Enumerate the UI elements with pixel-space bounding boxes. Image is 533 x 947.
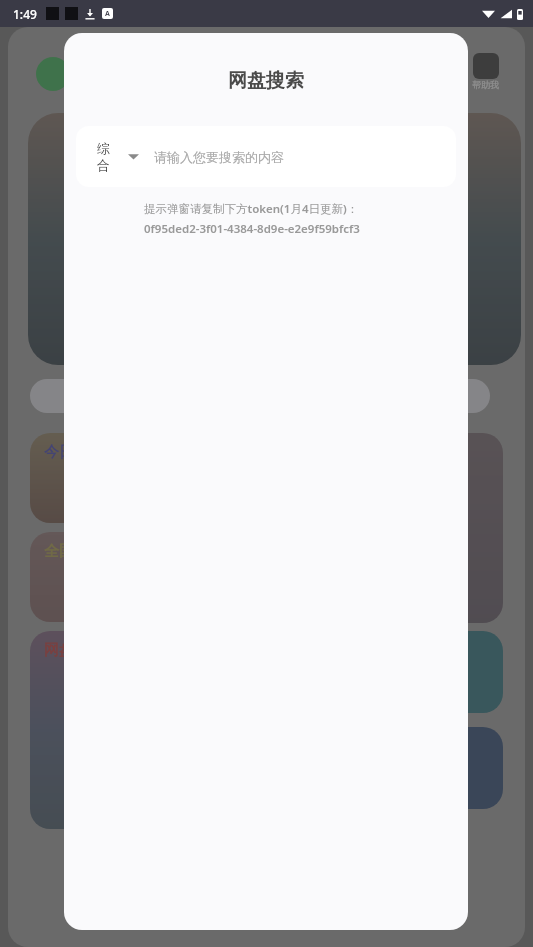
staticText: 网盘搜索 <box>64 69 468 93</box>
staticText: 综合 <box>97 140 116 174</box>
staticText: A <box>105 9 110 19</box>
button[interactable]: 综合 <box>76 126 456 187</box>
staticText: 今日 <box>44 443 74 462</box>
staticText: 0f95ded2-3f01-4384-8d9e-e2e9f59bfcf3 <box>144 221 360 237</box>
staticText: 帮助我 <box>472 79 499 90</box>
staticText: 提示弹窗请复制下方token(1月4日更新)： <box>144 201 359 217</box>
other: Select search type <box>128 151 139 162</box>
staticText: 请输入您要搜索的内容 <box>154 149 284 165</box>
staticText: 1:49 <box>13 6 37 22</box>
staticText: 全国 <box>44 542 74 561</box>
staticText: 网盘 <box>44 641 74 660</box>
